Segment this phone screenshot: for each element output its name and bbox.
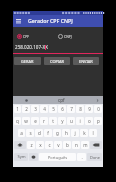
staticText: Done xyxy=(90,155,100,160)
button[interactable]: l xyxy=(89,129,97,137)
button[interactable]: More suggestions xyxy=(94,97,100,103)
staticText: . xyxy=(81,154,83,160)
button[interactable]: Shift xyxy=(14,141,26,149)
button[interactable]: 1 xyxy=(14,105,21,113)
button[interactable]: Open navigation menu xyxy=(14,15,23,27)
button[interactable]: p xyxy=(94,117,102,125)
staticText: x xyxy=(39,142,42,148)
staticText: u xyxy=(70,118,73,124)
staticText: c xyxy=(48,142,51,148)
staticText: GERAR xyxy=(21,59,34,64)
staticText: y xyxy=(61,118,64,124)
button[interactable]: CPF xyxy=(16,33,30,40)
button[interactable]: 6 xyxy=(58,105,66,113)
staticText: 1 xyxy=(16,106,19,112)
button[interactable]: i xyxy=(76,117,84,125)
staticText: p xyxy=(97,118,100,124)
staticText: o xyxy=(88,118,91,124)
staticText: l xyxy=(92,130,94,136)
button[interactable]: Done xyxy=(87,153,102,161)
button[interactable]: Sym xyxy=(14,153,28,161)
button[interactable]: q xyxy=(14,117,21,125)
button[interactable]: j xyxy=(71,129,79,137)
button[interactable]: x xyxy=(36,141,44,149)
button[interactable]: Voice input xyxy=(23,97,29,103)
button[interactable]: CNPJ xyxy=(57,33,73,40)
staticText: 0 xyxy=(97,106,100,112)
button[interactable]: v xyxy=(54,141,62,149)
staticText: e xyxy=(34,118,37,124)
button[interactable]: 5 xyxy=(49,105,57,113)
button[interactable]: m xyxy=(81,141,89,149)
button[interactable]: y xyxy=(58,117,66,125)
staticText: s xyxy=(29,130,32,136)
staticText: i xyxy=(79,118,81,124)
button[interactable]: 2 xyxy=(22,105,30,113)
staticText: COPIAR xyxy=(50,59,64,64)
staticText: a xyxy=(20,130,23,136)
button[interactable]: Backspace xyxy=(90,141,102,149)
button[interactable]: c xyxy=(45,141,53,149)
button[interactable]: o xyxy=(85,117,93,125)
button[interactable]: w xyxy=(22,117,30,125)
staticText: w xyxy=(24,118,28,124)
staticText: cpf xyxy=(58,97,65,103)
button[interactable]: r xyxy=(40,117,48,125)
staticText: t xyxy=(52,118,54,124)
staticText: 5 xyxy=(52,106,55,112)
button[interactable]: 8 xyxy=(76,105,84,113)
button[interactable]: a xyxy=(18,129,25,137)
staticText: 7 xyxy=(70,106,73,112)
staticText: 4 xyxy=(43,106,46,112)
staticText: r xyxy=(43,118,45,124)
button[interactable]: t xyxy=(49,117,57,125)
button[interactable]: d xyxy=(35,129,43,137)
button[interactable]: ENVIAR xyxy=(73,57,99,65)
button[interactable]: 4 xyxy=(40,105,48,113)
button[interactable]: . xyxy=(77,153,86,161)
staticText: 6 xyxy=(61,106,64,112)
button[interactable]: f xyxy=(44,129,52,137)
button[interactable]: k xyxy=(80,129,88,137)
staticText: Português xyxy=(48,155,67,160)
staticText: m xyxy=(83,142,88,148)
button[interactable]: z xyxy=(27,141,35,149)
button[interactable]: e xyxy=(31,117,39,125)
staticText: 3 xyxy=(34,106,37,112)
staticText: j xyxy=(74,130,76,136)
staticText: Gerador CPF CNPJ xyxy=(28,17,73,24)
button[interactable]: 9 xyxy=(85,105,93,113)
staticText: CNPJ xyxy=(64,34,72,39)
staticText: f xyxy=(47,130,49,136)
button[interactable]: s xyxy=(26,129,34,137)
staticText: CPF xyxy=(23,34,29,39)
button[interactable]: 7 xyxy=(67,105,75,113)
button[interactable]: Português xyxy=(39,153,76,161)
staticText: z xyxy=(30,142,33,148)
staticText: d xyxy=(38,130,41,136)
staticText: v xyxy=(57,142,60,148)
staticText: Sym xyxy=(17,154,26,160)
staticText: 9 xyxy=(88,106,91,112)
staticText: g xyxy=(56,130,59,136)
staticText: 2 xyxy=(25,106,28,112)
button[interactable]: g xyxy=(53,129,61,137)
staticText: b xyxy=(66,142,69,148)
staticText: k xyxy=(83,130,86,136)
button[interactable]: b xyxy=(63,141,71,149)
button[interactable]: h xyxy=(62,129,70,137)
staticText: 8 xyxy=(79,106,82,112)
button[interactable]: 3 xyxy=(31,105,39,113)
staticText: h xyxy=(65,130,68,136)
staticText: 258.020.107-XX xyxy=(15,44,48,50)
button[interactable]: GERAR xyxy=(14,57,41,65)
button[interactable]: Switch keyboard xyxy=(29,153,38,161)
button[interactable]: u xyxy=(67,117,75,125)
button[interactable]: n xyxy=(72,141,80,149)
button[interactable]: COPIAR xyxy=(44,57,70,65)
staticText: ENVIAR xyxy=(79,59,93,64)
staticText: n xyxy=(75,142,78,148)
button[interactable]: 0 xyxy=(94,105,102,113)
staticText: q xyxy=(16,118,19,124)
